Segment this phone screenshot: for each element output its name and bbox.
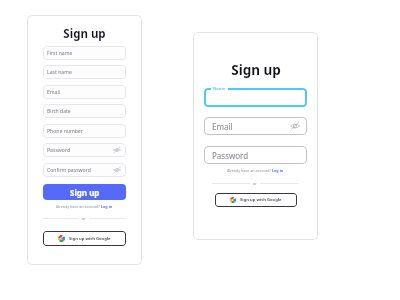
staticText: Password	[212, 150, 249, 161]
staticText: or	[82, 216, 86, 221]
other: Show password	[290, 122, 300, 130]
button[interactable]: Sign up with Google	[215, 193, 297, 207]
staticText: Birth date	[47, 108, 71, 115]
button[interactable]: Sign up with Google	[43, 231, 126, 246]
button[interactable]: Last name	[43, 65, 126, 79]
button[interactable]: Email	[204, 117, 307, 135]
staticText: Sign up	[63, 26, 106, 42]
staticText: Name	[213, 85, 226, 91]
button[interactable]: Phone number	[43, 124, 126, 138]
staticText: Already have an account?	[56, 204, 101, 209]
button[interactable]: Confirm password	[43, 163, 126, 177]
staticText: Sign up with Google	[240, 197, 282, 203]
staticText: or	[253, 181, 257, 186]
staticText: Email	[47, 89, 61, 96]
button[interactable]: Birth date	[43, 104, 126, 118]
button[interactable]: First name	[43, 46, 126, 60]
staticText: Sign up	[70, 187, 100, 198]
other: Show password	[113, 167, 121, 173]
other: Show password	[113, 147, 121, 153]
staticText: Last name	[47, 69, 72, 76]
staticText: Sign up with Google	[69, 236, 111, 242]
staticText: Phone number	[47, 128, 83, 135]
staticText: Password	[47, 147, 71, 154]
button[interactable]	[204, 88, 307, 107]
button[interactable]: Sign up	[43, 184, 126, 200]
button[interactable]: Password	[204, 146, 307, 164]
staticText: Sign up	[231, 61, 281, 79]
staticText: Confirm password	[47, 167, 91, 174]
button[interactable]: Password	[43, 143, 126, 157]
staticText: First name	[47, 50, 73, 57]
staticText: Email	[212, 121, 233, 132]
staticText: Already have an account?	[227, 168, 272, 173]
button[interactable]: Email	[43, 85, 126, 99]
button[interactable]: Log in	[101, 204, 113, 209]
button[interactable]: Log in	[272, 168, 284, 173]
